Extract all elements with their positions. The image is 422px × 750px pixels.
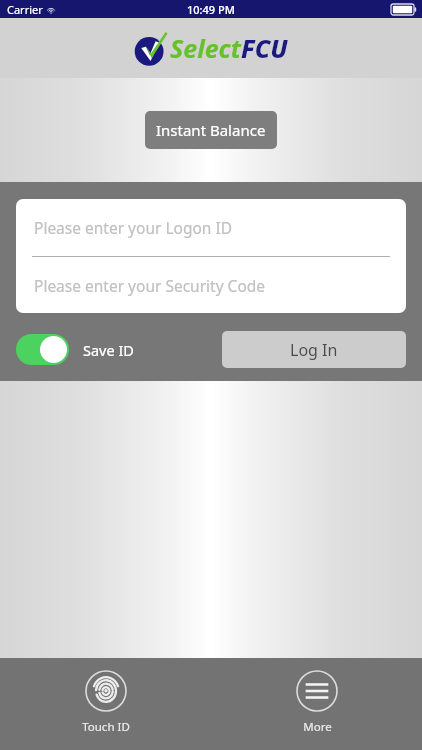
staticText: Please enter your Logon ID [34,217,232,238]
staticText: More [303,719,332,735]
staticText: Log In [290,339,338,361]
staticText: Instant Balance [156,120,266,140]
staticText: Carrier [7,2,43,17]
staticText: FCU [241,31,288,65]
button[interactable]: More [296,670,338,735]
button[interactable]: Please enter your Logon ID [16,199,406,256]
button[interactable]: Instant Balance [145,111,277,149]
staticText: 10:49 PM [187,2,235,17]
other: More [296,670,338,712]
button[interactable]: Log In [222,331,406,368]
staticText: Touch ID [82,719,130,735]
button[interactable]: Save ID [16,334,134,365]
staticText: Save ID [83,340,134,360]
staticText: Select [170,31,241,65]
other: Touch ID [85,670,127,712]
button[interactable]: Touch ID [82,670,130,735]
staticText: Please enter your Security Code [34,275,266,296]
button[interactable]: Please enter your Security Code [16,257,406,313]
